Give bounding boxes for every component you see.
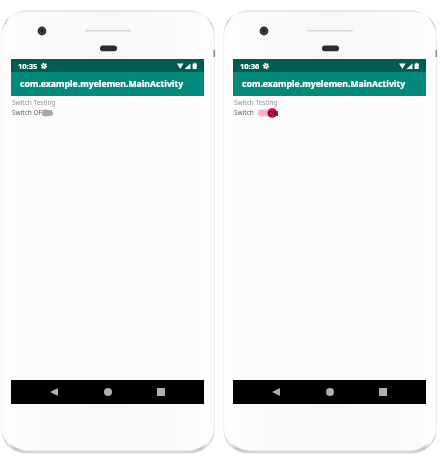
staticText: Switch [234, 108, 254, 117]
button[interactable]: Back [266, 382, 286, 402]
staticText: ON [268, 109, 279, 118]
other: Settings [41, 63, 47, 69]
button[interactable]: ON [258, 107, 279, 119]
staticText: Switch Testing [234, 98, 278, 107]
button[interactable]: Recents [373, 382, 393, 402]
button[interactable]: Back [44, 382, 64, 402]
staticText: com.example.myelemen.MainActivity [20, 78, 184, 90]
button[interactable]: Home [98, 382, 118, 402]
staticText: com.example.myelemen.MainActivity [242, 78, 406, 90]
button[interactable]: Recents [151, 382, 171, 402]
button[interactable]: Home [320, 382, 340, 402]
button[interactable] [42, 107, 63, 119]
staticText: Switch Testing [12, 98, 56, 107]
other: Settings [263, 63, 269, 69]
staticText: 10:35 [18, 61, 38, 71]
staticText: Switch OFF [12, 108, 46, 117]
staticText: 10:36 [240, 61, 260, 71]
